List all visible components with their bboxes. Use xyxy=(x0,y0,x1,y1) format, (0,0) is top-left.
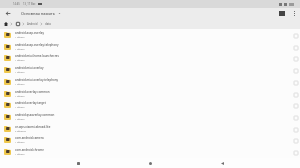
button[interactable]: Выбрать xyxy=(291,42,300,53)
staticText: android.acap.overlay xyxy=(15,31,44,35)
staticText: Основная память xyxy=(21,11,55,16)
staticText: android.overlay.common xyxy=(15,90,50,94)
button[interactable]: Выбрать xyxy=(291,112,300,123)
staticText: android.miui.overlay.telephony xyxy=(15,78,59,82)
staticText: 1 объект xyxy=(15,153,25,156)
staticText: 1 объект xyxy=(15,83,25,86)
button[interactable]: Выбрать xyxy=(291,124,300,135)
button[interactable]: Главный экран xyxy=(145,158,155,168)
button[interactable]: android.overlay.common xyxy=(0,88,300,100)
staticText: 1 объект xyxy=(15,95,25,98)
button[interactable]: Обзор xyxy=(73,158,83,168)
staticText: 1 объект xyxy=(15,141,25,144)
staticText: android.qsaoverlay.common xyxy=(15,113,55,117)
button[interactable]: Выбрать xyxy=(291,30,300,41)
button[interactable]: Переключить вид xyxy=(275,8,289,19)
button[interactable]: android.overlay.target xyxy=(0,99,300,111)
button[interactable]: Домашняя папка xyxy=(3,20,8,28)
staticText: 1 объект xyxy=(15,106,25,109)
button[interactable]: Выбрать xyxy=(291,65,300,76)
staticText: 3 объекта xyxy=(15,130,26,133)
button[interactable]: android.acap.overlay xyxy=(0,29,300,41)
staticText: android.miui.home.launcher.res xyxy=(15,54,59,58)
staticText: 1 объект xyxy=(15,118,25,121)
button[interactable]: Выбрать xyxy=(291,135,300,146)
button[interactable]: Выбрать xyxy=(291,77,300,88)
button[interactable]: data xyxy=(45,22,51,26)
staticText: com.android.camera xyxy=(15,136,44,140)
button[interactable]: android.acap.overlay.telephony xyxy=(0,41,300,53)
button[interactable]: android.qsaoverlay.common xyxy=(0,111,300,123)
button[interactable]: Выбрать xyxy=(291,53,300,64)
staticText: android.overlay.target xyxy=(15,101,46,105)
staticText: com.android.chrome xyxy=(15,148,44,152)
button[interactable]: android.miui.home.launcher.res xyxy=(0,52,300,64)
button[interactable]: Выбрать xyxy=(291,147,300,158)
staticText: cn.wps.xiaomi.abroad.lite xyxy=(15,125,51,129)
staticText: 1 объект xyxy=(15,48,25,51)
button[interactable]: com.android.camera xyxy=(0,134,300,146)
staticText: 14:45 xyxy=(13,2,20,6)
staticText: android.miui.overlay xyxy=(15,66,44,70)
button[interactable]: Android xyxy=(27,22,38,26)
staticText: data xyxy=(45,22,51,26)
staticText: Android xyxy=(27,22,38,26)
button[interactable]: android.miui.overlay.telephony xyxy=(0,76,300,88)
button[interactable]: Назад xyxy=(217,158,227,168)
button[interactable]: com.android.chrome xyxy=(0,146,300,158)
staticText: android.acap.overlay.telephony xyxy=(15,43,59,47)
button[interactable]: Назад xyxy=(0,8,16,19)
button[interactable]: Выбрать xyxy=(291,100,300,111)
button[interactable]: Выбрать xyxy=(291,89,300,100)
button[interactable]: android.miui.overlay xyxy=(0,64,300,76)
staticText: 13, 17 Вос xyxy=(23,2,36,6)
staticText: 1 объект xyxy=(15,36,25,39)
staticText: 1 объект xyxy=(15,71,25,74)
button[interactable]: Накопитель xyxy=(15,20,20,28)
staticText: 1 объект xyxy=(15,59,25,62)
button[interactable]: cn.wps.xiaomi.abroad.lite xyxy=(0,123,300,135)
button[interactable]: Ещё xyxy=(289,8,300,19)
